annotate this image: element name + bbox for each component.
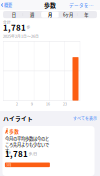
staticText: 6ヶ月 (63, 11, 73, 18)
staticText: 3月 (6, 162, 11, 167)
staticText: 23 (63, 101, 67, 106)
button[interactable]: 概要 (0, 0, 20, 10)
button[interactable]: データを追加 (69, 0, 100, 10)
button[interactable]: すべてを表示 (67, 114, 100, 122)
staticText: 合計 (3, 19, 11, 25)
staticText: 1,781 (3, 21, 26, 33)
staticText: 年 (84, 11, 88, 18)
button[interactable]: 歩数 (2, 126, 94, 176)
staticText: 週 (30, 11, 34, 18)
staticText: 日 (12, 11, 16, 18)
staticText: 歩数 (44, 1, 56, 9)
staticText: 歩数 (9, 128, 19, 134)
button[interactable]: 年 (77, 12, 95, 18)
staticText: 16 (46, 101, 50, 106)
staticText: 歩 (26, 24, 30, 30)
button[interactable]: 日 (5, 12, 23, 18)
button[interactable]: 月 (41, 12, 59, 18)
staticText: すべてを表示 (73, 116, 97, 121)
button[interactable]: 週 (23, 12, 41, 18)
staticText: ハイライト (3, 114, 33, 123)
staticText: データを追加 (69, 2, 98, 8)
staticText: 9 (31, 101, 33, 106)
staticText: 今月の平均歩数は今のところ先月よりも少ないです。 (5, 135, 49, 154)
button[interactable]: 6ヶ月 (59, 12, 77, 18)
staticText: 歩/日 (28, 151, 37, 156)
staticText: 2025年2月1日〜26日 (3, 33, 39, 39)
staticText: 月 (48, 11, 52, 18)
staticText: 2 (16, 101, 18, 106)
staticText: 概要 (4, 2, 12, 8)
staticText: 1,781 (5, 148, 28, 159)
